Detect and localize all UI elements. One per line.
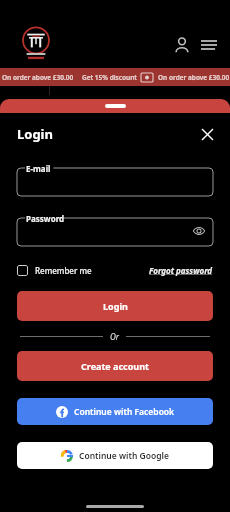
button[interactable]: Forgot password [149, 265, 213, 276]
staticText: Get 15% discount [82, 73, 137, 82]
button[interactable] [17, 168, 213, 196]
button[interactable]: On order above £30.00 [0, 68, 230, 86]
staticText: Continue with Google [79, 450, 169, 462]
button[interactable]: Continue with Google [17, 442, 213, 469]
staticText: On order above £30.00 [2, 73, 74, 82]
staticText: Or [110, 331, 119, 342]
staticText: On order above £30.00 [158, 73, 230, 82]
button[interactable] [17, 218, 213, 246]
button[interactable]: Show password [192, 224, 206, 238]
staticText: Create account [81, 360, 149, 372]
staticText: Password [26, 213, 65, 224]
staticText: Continue with Facebook [74, 406, 175, 418]
button[interactable]: Menu [197, 33, 221, 57]
staticText: E-mail [26, 163, 51, 174]
staticText: Remember me [35, 265, 92, 276]
button[interactable]: Login [17, 291, 213, 321]
staticText: Forgot password [149, 265, 213, 276]
button[interactable]: Create account [17, 351, 213, 381]
button[interactable]: Close [196, 123, 218, 145]
button[interactable]: Continue with Facebook [17, 398, 213, 425]
button[interactable]: Home logo [18, 26, 54, 62]
button[interactable]: Remember me [17, 265, 92, 276]
staticText: Login [103, 300, 128, 312]
staticText: Login [17, 125, 53, 143]
button[interactable]: Account [170, 33, 194, 57]
